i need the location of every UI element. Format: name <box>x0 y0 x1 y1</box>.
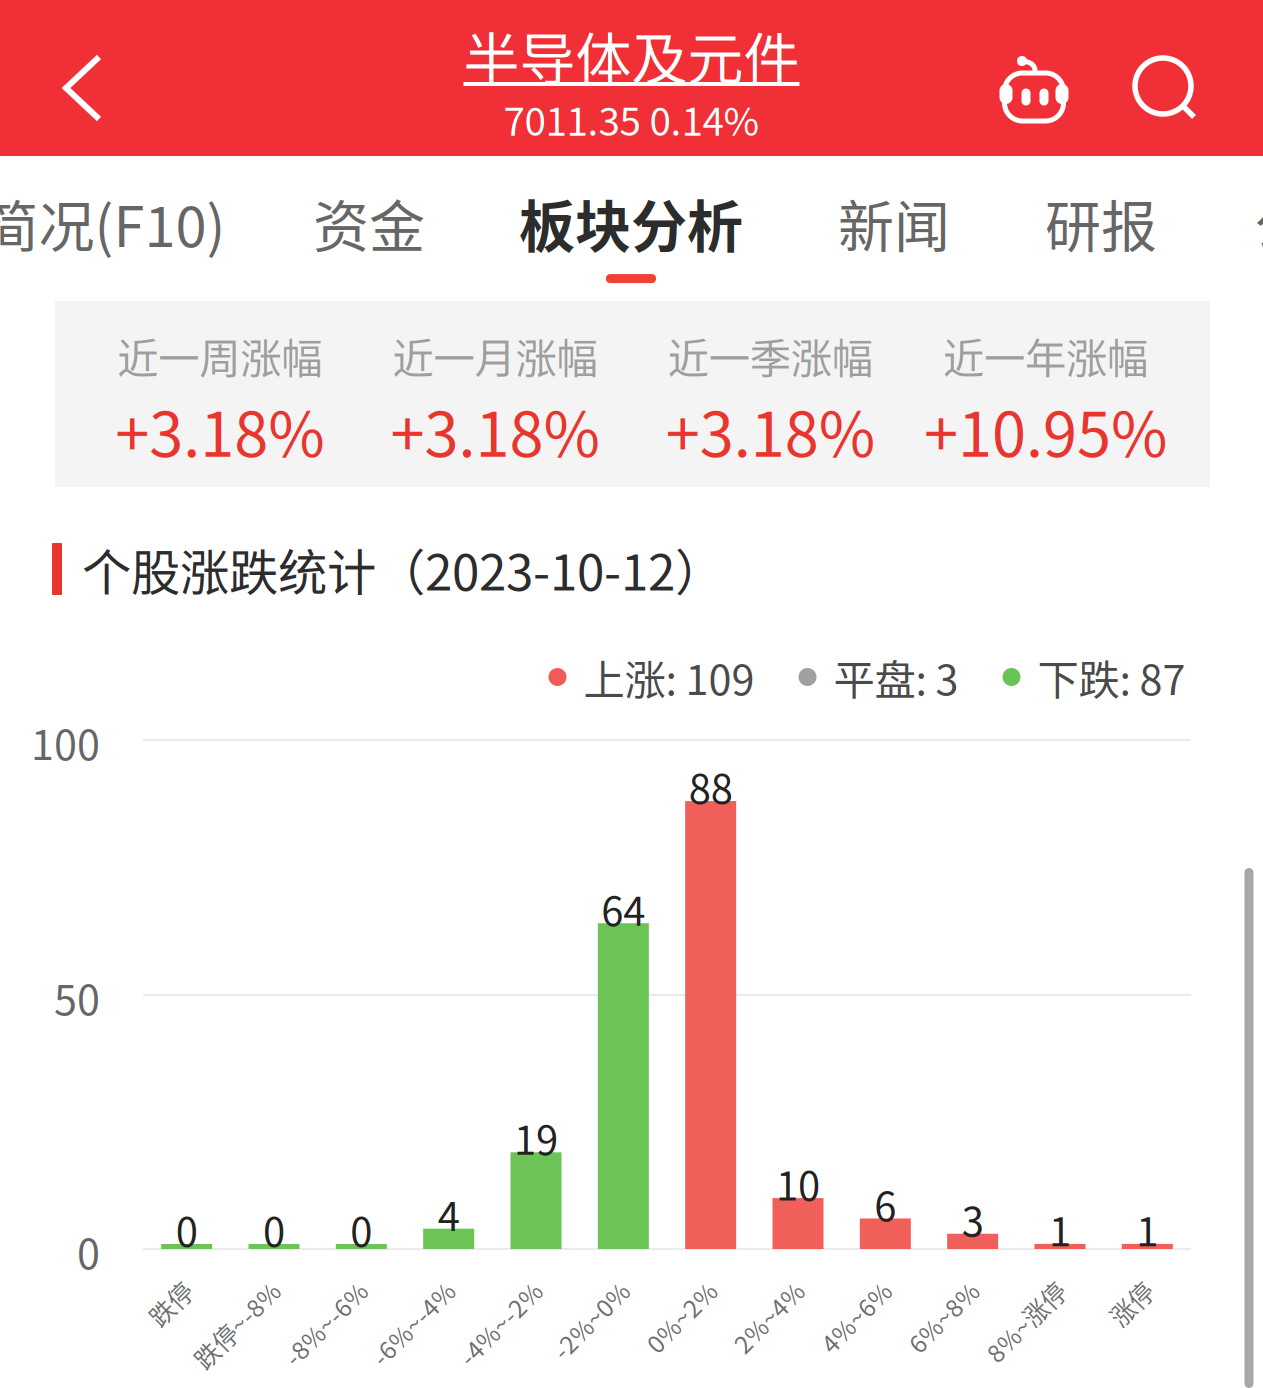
staticText: +3.18% <box>115 385 324 474</box>
staticText: 个股涨跌统计（2023-10-12） <box>82 533 724 605</box>
staticText: 19 <box>514 1108 558 1166</box>
staticText: 1 <box>1136 1200 1158 1258</box>
staticText: 6%~8% <box>874 1273 962 1309</box>
staticText: 3 <box>962 1190 984 1248</box>
staticText: -2%~0% <box>515 1273 612 1309</box>
staticText: 跌停 <box>126 1273 176 1309</box>
staticText: 88 <box>689 757 733 815</box>
staticText: 64 <box>601 879 645 937</box>
staticText: 平盘: 3 <box>833 647 958 707</box>
staticText: 近一月涨幅 <box>392 326 597 386</box>
staticText: 近一周涨幅 <box>117 326 322 386</box>
staticText: -8%~-6% <box>244 1273 350 1309</box>
button[interactable]: 简况(F10) <box>0 156 254 304</box>
button[interactable]: 板块分析 <box>501 156 761 304</box>
staticText: -6%~-4% <box>332 1273 438 1309</box>
staticText: 新闻 <box>838 182 950 263</box>
button[interactable]: Search <box>1111 9 1221 165</box>
staticText: 1 <box>1049 1200 1071 1258</box>
staticText: 0 <box>176 1200 198 1258</box>
staticText: 上涨: 109 <box>583 647 754 707</box>
staticText: 资金 <box>313 182 425 263</box>
staticText: 半导体及元件 <box>463 14 799 96</box>
staticText: +3.18% <box>390 385 599 474</box>
staticText: 近一年涨幅 <box>943 326 1148 386</box>
staticText: 100 <box>31 712 100 772</box>
staticText: 0 <box>350 1200 372 1258</box>
staticText: 简况(F10) <box>0 182 225 263</box>
staticText: 4 <box>438 1185 460 1243</box>
staticText: 公告 <box>1254 182 1263 263</box>
staticText: 4%~6% <box>786 1273 874 1309</box>
button[interactable]: Back <box>23 10 143 166</box>
button[interactable]: 研报 <box>1011 156 1191 304</box>
staticText: -4%~-2% <box>419 1273 525 1309</box>
staticText: 7011.35 0.14% <box>503 91 759 147</box>
staticText: 50 <box>54 967 100 1027</box>
staticText: 2%~4% <box>699 1273 787 1309</box>
staticText: 跌停~-8% <box>153 1273 263 1309</box>
staticText: 0%~2% <box>612 1273 700 1309</box>
staticText: 8%~涨停 <box>948 1273 1049 1309</box>
button[interactable]: 公告 <box>1220 156 1263 304</box>
staticText: +10.95% <box>924 385 1167 474</box>
staticText: 研报 <box>1045 182 1157 263</box>
button[interactable]: AI assistant <box>979 10 1089 166</box>
staticText: 近一季涨幅 <box>668 326 873 386</box>
staticText: 板块分析 <box>519 182 743 263</box>
staticText: 6 <box>874 1174 896 1232</box>
staticText: 下跌: 87 <box>1037 647 1185 707</box>
staticText: 涨停 <box>1086 1273 1136 1309</box>
staticText: 0 <box>263 1200 285 1258</box>
staticText: +3.18% <box>666 385 875 474</box>
button[interactable]: 资金 <box>279 156 459 304</box>
staticText: 10 <box>776 1154 820 1212</box>
button[interactable]: 新闻 <box>804 156 984 304</box>
staticText: 0 <box>77 1221 100 1281</box>
